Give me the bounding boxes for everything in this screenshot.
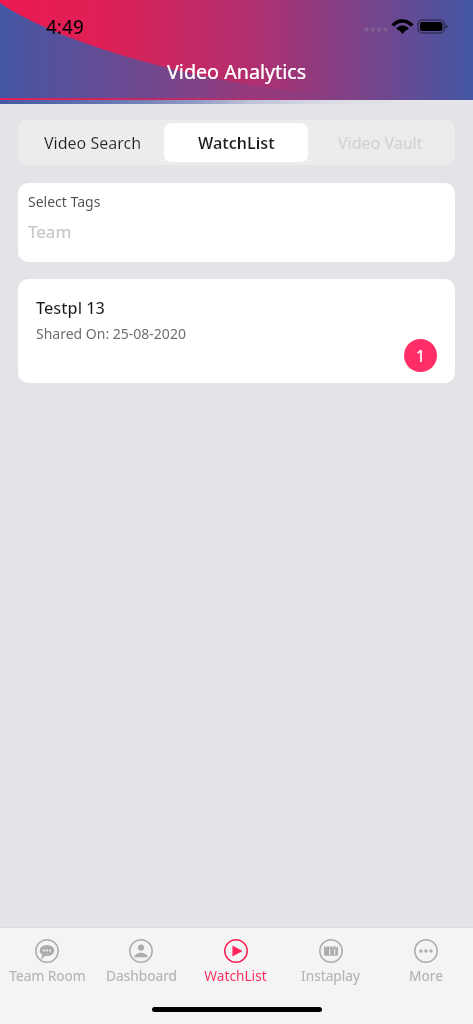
button[interactable]: WatchList: [164, 123, 308, 162]
staticText: Team: [28, 220, 72, 243]
staticText: 4:49: [46, 14, 84, 40]
staticText: Select Tags: [28, 192, 101, 211]
staticText: More: [409, 966, 443, 985]
staticText: Video Search: [44, 132, 142, 154]
staticText: WatchList: [198, 132, 275, 154]
staticText: Video Analytics: [167, 58, 307, 85]
button[interactable]: Video Search: [21, 123, 164, 162]
button[interactable]: Select Tags: [18, 183, 455, 262]
staticText: Instaplay: [301, 966, 360, 985]
button[interactable]: Video Vault: [308, 123, 452, 162]
staticText: Testpl 13: [36, 297, 105, 319]
staticText: Dashboard: [106, 966, 177, 985]
button[interactable]: Testpl 13: [18, 279, 455, 383]
other: Team Room: [35, 939, 59, 963]
other: Dashboard: [129, 939, 153, 963]
button[interactable]: Instaplay: [283, 928, 378, 988]
staticText: Shared On: 25-08-2020: [36, 324, 186, 343]
other: Instaplay: [319, 939, 343, 963]
staticText: 1: [416, 345, 426, 367]
button[interactable]: More: [378, 928, 473, 988]
button[interactable]: Dashboard: [94, 928, 188, 988]
other: WatchList: [224, 939, 248, 963]
button[interactable]: Team Room: [0, 928, 94, 988]
button[interactable]: WatchList: [188, 928, 283, 988]
staticText: Team Room: [9, 966, 86, 985]
other: More: [414, 939, 438, 963]
staticText: Video Vault: [338, 132, 423, 154]
staticText: WatchList: [204, 966, 267, 985]
